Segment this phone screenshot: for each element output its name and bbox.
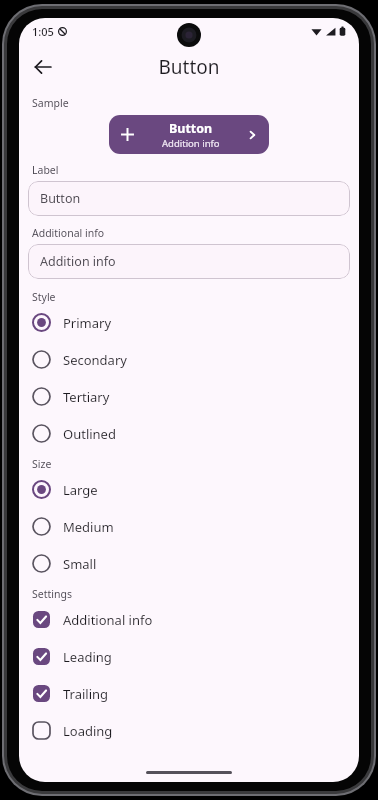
staticText: Additional info — [63, 611, 153, 629]
button[interactable]: Primary — [28, 304, 350, 341]
staticText: Small — [63, 555, 97, 573]
staticText: Style — [32, 290, 56, 304]
staticText: Label — [32, 163, 59, 177]
staticText: Outlined — [63, 425, 116, 443]
button[interactable]: Addition info — [28, 244, 350, 279]
staticText: Secondary — [63, 351, 127, 369]
staticText: Additional info — [32, 226, 105, 240]
button[interactable]: Trailing — [28, 675, 350, 712]
button[interactable]: Small — [28, 545, 350, 582]
staticText: 1:05 — [32, 24, 54, 39]
button[interactable]: Secondary — [28, 341, 350, 378]
staticText: Leading — [63, 648, 112, 666]
staticText: Medium — [63, 518, 114, 536]
staticText: Primary — [63, 314, 112, 332]
button[interactable]: Loading — [28, 712, 350, 749]
button[interactable]: Additional info — [28, 601, 350, 638]
staticText: Button — [40, 190, 81, 207]
staticText: Loading — [63, 722, 113, 740]
staticText: Settings — [32, 587, 72, 601]
staticText: Large — [63, 481, 98, 499]
staticText: Sample — [32, 96, 69, 110]
button[interactable]: Large — [28, 471, 350, 508]
staticText: Button — [169, 120, 213, 137]
staticText: Trailing — [63, 685, 109, 703]
staticText: Addition info — [40, 253, 116, 270]
staticText: Button — [158, 54, 220, 80]
button[interactable]: Tertiary — [28, 378, 350, 415]
button[interactable]: Button — [109, 115, 269, 154]
button[interactable]: Button — [28, 181, 350, 216]
staticText: Size — [32, 457, 52, 471]
staticText: Tertiary — [63, 388, 110, 406]
button[interactable]: Leading — [28, 638, 350, 675]
button[interactable]: Outlined — [28, 415, 350, 452]
staticText: Addition info — [162, 137, 220, 150]
button[interactable]: Medium — [28, 508, 350, 545]
button[interactable]: Back — [23, 47, 63, 87]
